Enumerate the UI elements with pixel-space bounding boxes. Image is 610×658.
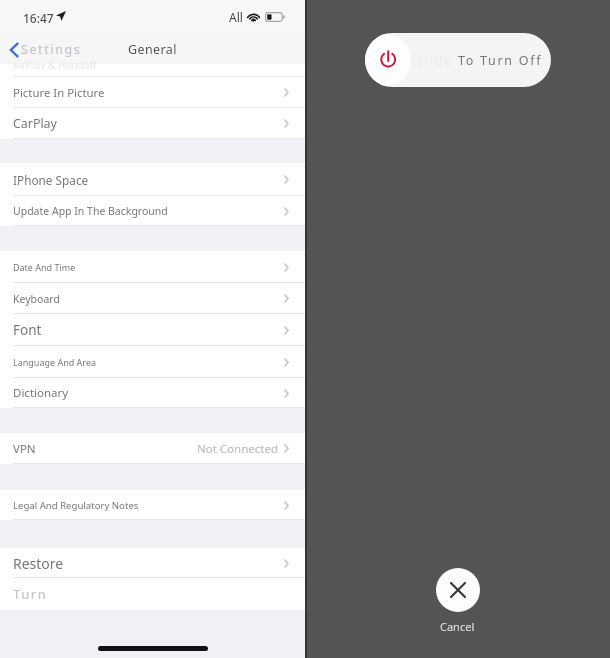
button[interactable]: Date And Time bbox=[0, 251, 305, 283]
button[interactable]: CarPlay bbox=[0, 108, 305, 139]
button[interactable]: Update App In The Background bbox=[0, 196, 305, 226]
staticText: CarPlay bbox=[13, 115, 57, 132]
staticText: Restore bbox=[13, 554, 64, 573]
staticText: Font bbox=[13, 321, 42, 339]
button[interactable]: Cancel bbox=[436, 568, 480, 612]
button[interactable]: Slide bbox=[365, 33, 551, 87]
button[interactable]: Restore bbox=[0, 548, 305, 578]
staticText: Not Connected bbox=[197, 441, 278, 457]
button[interactable]: VPN bbox=[0, 433, 305, 464]
button[interactable]: Turn bbox=[0, 578, 305, 610]
staticText: 16:47 bbox=[23, 10, 54, 26]
button[interactable]: Dictionary bbox=[0, 378, 305, 408]
button[interactable]: Keyboard bbox=[0, 283, 305, 314]
staticText: VPN bbox=[13, 441, 36, 457]
staticText: Dictionary bbox=[13, 385, 69, 401]
staticText: Date And Time bbox=[13, 261, 76, 273]
staticText: Update App In The Background bbox=[13, 204, 168, 218]
staticText: Turn bbox=[13, 585, 48, 603]
button[interactable]: Font bbox=[0, 314, 305, 346]
staticText: Settings bbox=[21, 41, 82, 58]
staticText: Picture In Picture bbox=[13, 85, 105, 101]
staticText: General bbox=[128, 41, 177, 58]
staticText: Keyboard bbox=[13, 292, 60, 306]
button[interactable]: Language And Area bbox=[0, 346, 305, 378]
staticText: IPhone Space bbox=[13, 172, 89, 188]
button[interactable]: Picture In Picture bbox=[0, 77, 305, 108]
staticText: Legal And Regulatory Notes bbox=[13, 499, 139, 512]
staticText: Cancel bbox=[440, 619, 475, 634]
button[interactable]: IPhone Space bbox=[0, 163, 305, 196]
button[interactable]: Settings bbox=[9, 41, 82, 58]
button[interactable]: Legal And Regulatory Notes bbox=[0, 490, 305, 520]
staticText: All bbox=[229, 9, 243, 25]
staticText: Language And Area bbox=[13, 356, 97, 368]
staticText: To Turn Off bbox=[458, 52, 543, 69]
staticText: AirPlay & Handoff bbox=[13, 58, 97, 71]
